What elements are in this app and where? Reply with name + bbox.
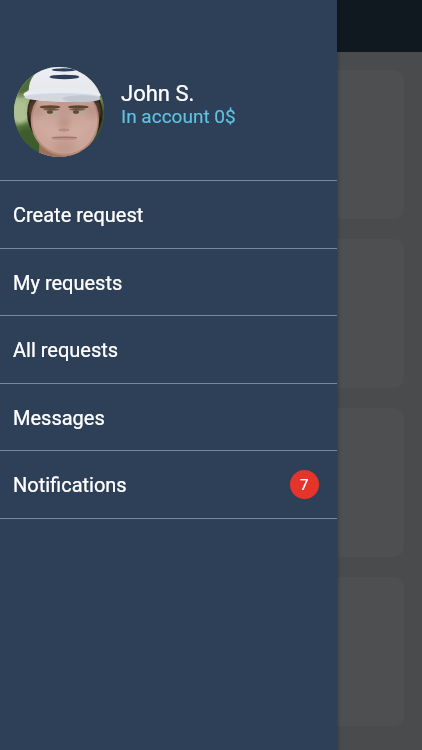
button[interactable]: Notifications: [0, 451, 337, 518]
button[interactable]: Create request: [0, 181, 337, 248]
other: Profile photo of John S.: [14, 67, 104, 157]
staticText: All requests: [13, 338, 119, 361]
staticText: John S.: [121, 81, 195, 107]
button[interactable]: All requests: [0, 316, 337, 383]
staticText: Notifications: [13, 473, 127, 496]
staticText: Create request: [13, 203, 144, 226]
staticText: In account 0$: [121, 105, 236, 127]
staticText: 7: [300, 476, 309, 494]
button[interactable]: Messages: [0, 384, 337, 450]
staticText: Messages: [13, 406, 105, 429]
staticText: My requests: [13, 271, 123, 294]
button[interactable]: My requests: [0, 249, 337, 315]
